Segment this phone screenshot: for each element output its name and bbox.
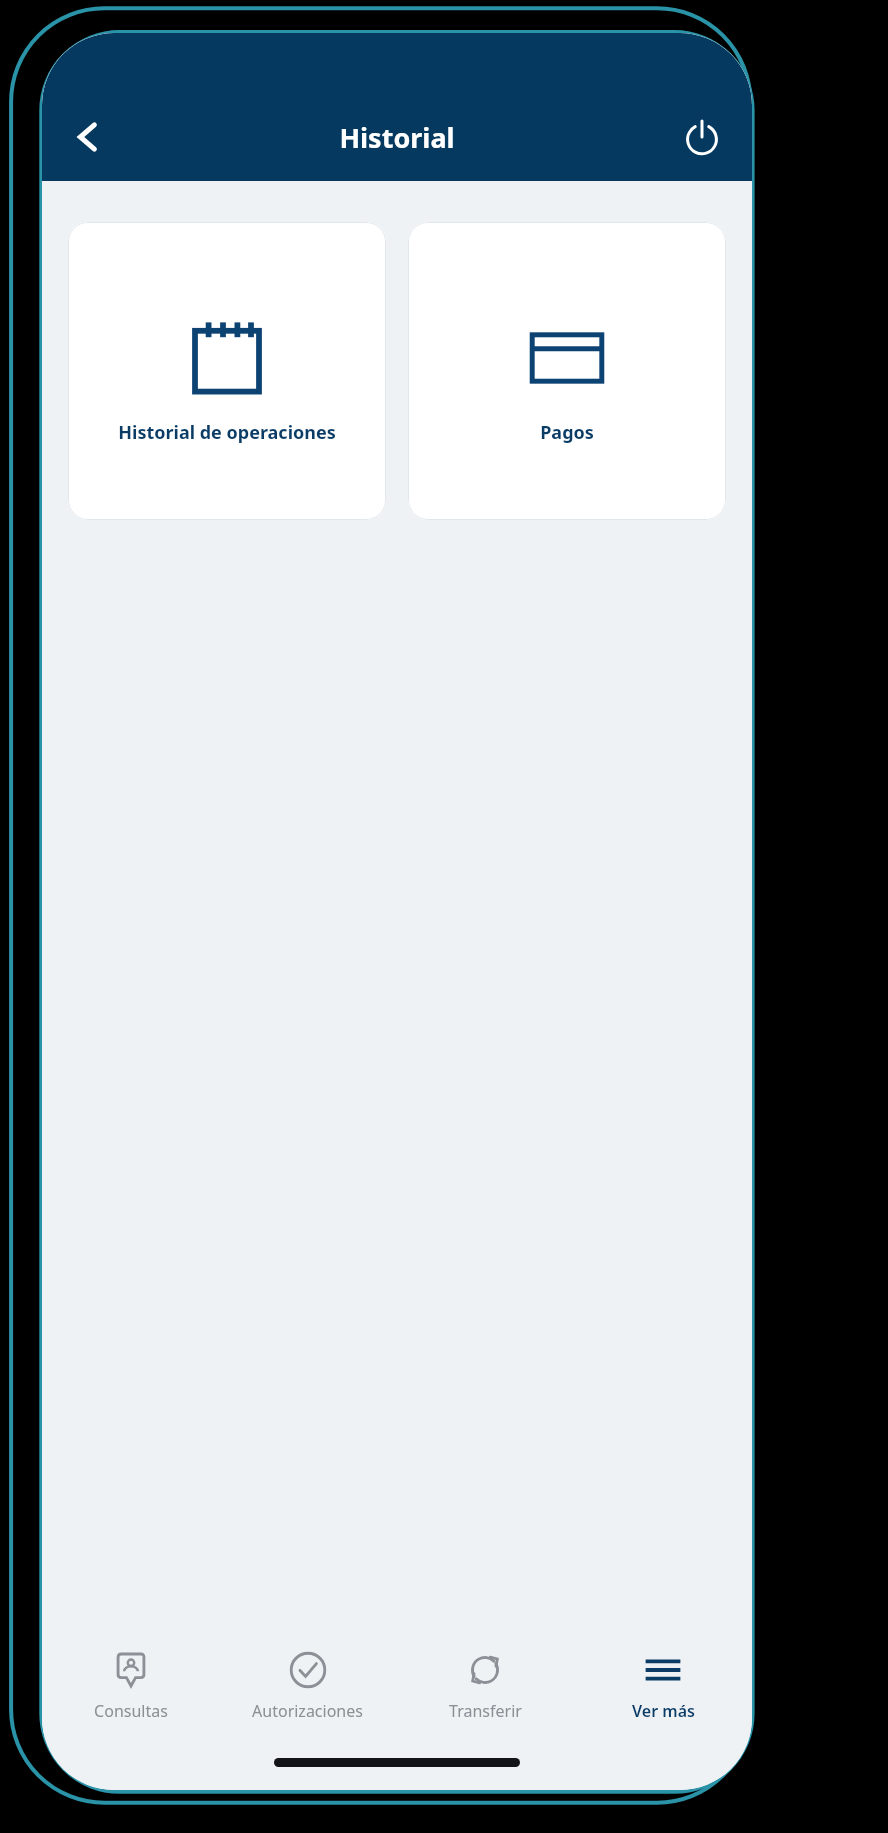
staticText: Transferir: [449, 1700, 522, 1722]
button[interactable]: Log out: [670, 105, 734, 169]
button[interactable]: Back: [56, 105, 120, 169]
staticText: Historial: [339, 119, 455, 156]
staticText: Pagos: [540, 420, 594, 445]
button[interactable]: Transferir: [396, 1630, 574, 1742]
button[interactable]: Historial de operaciones: [68, 222, 386, 520]
staticText: Autorizaciones: [252, 1700, 363, 1722]
button[interactable]: Ver más: [574, 1630, 752, 1742]
button[interactable]: Autorizaciones: [219, 1630, 396, 1742]
button[interactable]: Pagos: [408, 222, 726, 520]
button[interactable]: Consultas: [42, 1630, 219, 1742]
staticText: Ver más: [632, 1700, 695, 1722]
staticText: Historial de operaciones: [118, 420, 336, 445]
staticText: Consultas: [94, 1700, 168, 1722]
